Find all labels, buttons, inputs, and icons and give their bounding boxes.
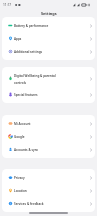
staticText: Privacy: [14, 176, 60, 180]
staticText: Services & feedback: [14, 202, 60, 206]
staticText: Additional settings: [14, 50, 60, 54]
staticText: Accounts & sync: [14, 148, 60, 152]
button[interactable]: Privacy: [2, 171, 95, 184]
button[interactable]: Location: [2, 184, 95, 197]
staticText: Location: [14, 189, 60, 193]
button[interactable]: Special features: [2, 88, 95, 101]
staticText: Settings: [41, 11, 57, 16]
button[interactable]: Services & feedback: [2, 197, 95, 210]
staticText: Apps: [14, 37, 60, 41]
button[interactable]: Mi Account: [2, 117, 95, 130]
staticText: 11:17: [3, 3, 12, 7]
button[interactable]: Apps: [2, 32, 95, 45]
staticText: Mi Account: [14, 122, 60, 126]
button[interactable]: Digital Wellbeing & parental controls: [2, 69, 95, 88]
staticText: Google: [14, 135, 60, 139]
button[interactable]: Google: [2, 130, 95, 143]
staticText: Special features: [14, 93, 60, 97]
staticText: Battery & performance: [14, 24, 60, 28]
button[interactable]: Additional settings: [2, 45, 95, 58]
button[interactable]: Battery & performance: [2, 19, 95, 32]
button[interactable]: Accounts & sync: [2, 143, 95, 156]
staticText: Digital Wellbeing & parental controls: [14, 74, 60, 84]
